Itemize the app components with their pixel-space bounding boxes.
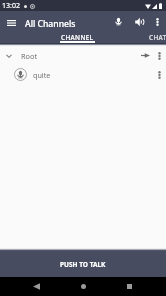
button[interactable]: CHANNEL bbox=[60, 32, 95, 43]
button[interactable]: Back bbox=[27, 277, 46, 296]
button[interactable]: User options bbox=[152, 65, 166, 84]
staticText: All Channels bbox=[25, 18, 76, 30]
button[interactable]: PUSH TO TALK bbox=[0, 251, 166, 277]
button[interactable]: CHAT bbox=[149, 32, 166, 43]
staticText: Root bbox=[21, 51, 38, 61]
staticText: 13:02 bbox=[2, 1, 20, 11]
button[interactable]: Open navigation menu bbox=[1, 12, 21, 33]
staticText: CHAT bbox=[149, 33, 166, 42]
button[interactable]: Join channel bbox=[137, 46, 154, 65]
button[interactable]: Channel options bbox=[152, 46, 166, 65]
button[interactable]: Home bbox=[74, 277, 93, 296]
button[interactable]: Recent apps bbox=[120, 277, 139, 296]
button[interactable]: Volume bbox=[129, 11, 150, 32]
button[interactable]: Root bbox=[0, 46, 166, 65]
button[interactable]: More options bbox=[149, 11, 166, 32]
staticText: quite bbox=[33, 70, 51, 80]
staticText: PUSH TO TALK bbox=[60, 260, 106, 269]
staticText: CHANNEL bbox=[61, 33, 94, 42]
button[interactable]: Microphone bbox=[108, 11, 129, 32]
button[interactable]: quite bbox=[0, 65, 166, 84]
